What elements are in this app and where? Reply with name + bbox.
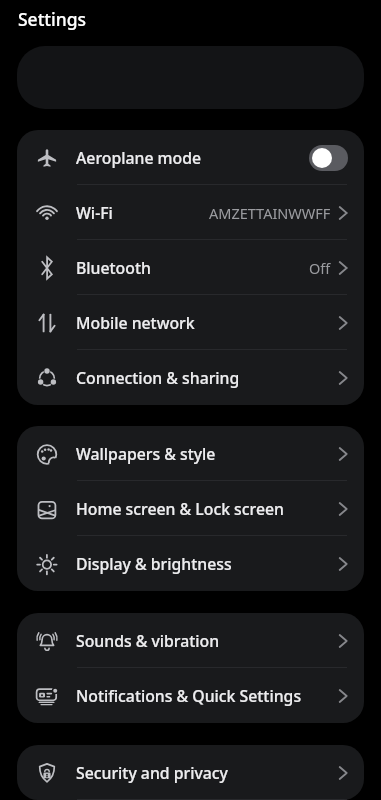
staticText: Sounds & vibration xyxy=(76,630,220,652)
staticText: Mobile network xyxy=(76,312,195,334)
button[interactable]: Bluetooth xyxy=(17,240,364,295)
button[interactable]: Sounds & vibration xyxy=(17,613,364,668)
staticText: Notifications & Quick Settings xyxy=(76,685,302,707)
staticText: Settings xyxy=(18,7,87,31)
staticText: Off xyxy=(309,258,331,278)
staticText: AMZETTAINWWFF xyxy=(209,203,331,223)
button[interactable] xyxy=(309,145,348,171)
staticText: Security and privacy xyxy=(76,762,228,784)
staticText: Connection & sharing xyxy=(76,367,240,389)
staticText: Bluetooth xyxy=(76,257,151,279)
button[interactable]: Wi-Fi xyxy=(17,185,364,240)
button[interactable]: Wallpapers & style xyxy=(17,426,364,481)
button[interactable]: Notifications & Quick Settings xyxy=(17,668,364,723)
button[interactable]: Home screen & Lock screen xyxy=(17,481,364,536)
button[interactable]: Mobile network xyxy=(17,295,364,350)
button[interactable]: Display & brightness xyxy=(17,536,364,591)
button[interactable]: Aeroplane mode xyxy=(17,130,364,185)
staticText: Wi-Fi xyxy=(76,202,113,224)
button[interactable]: Security and privacy xyxy=(17,745,364,800)
staticText: Aeroplane mode xyxy=(76,147,202,169)
button[interactable]: Connection & sharing xyxy=(17,350,364,405)
staticText: Display & brightness xyxy=(76,553,232,575)
staticText: Home screen & Lock screen xyxy=(76,498,284,520)
staticText: Wallpapers & style xyxy=(76,443,216,465)
